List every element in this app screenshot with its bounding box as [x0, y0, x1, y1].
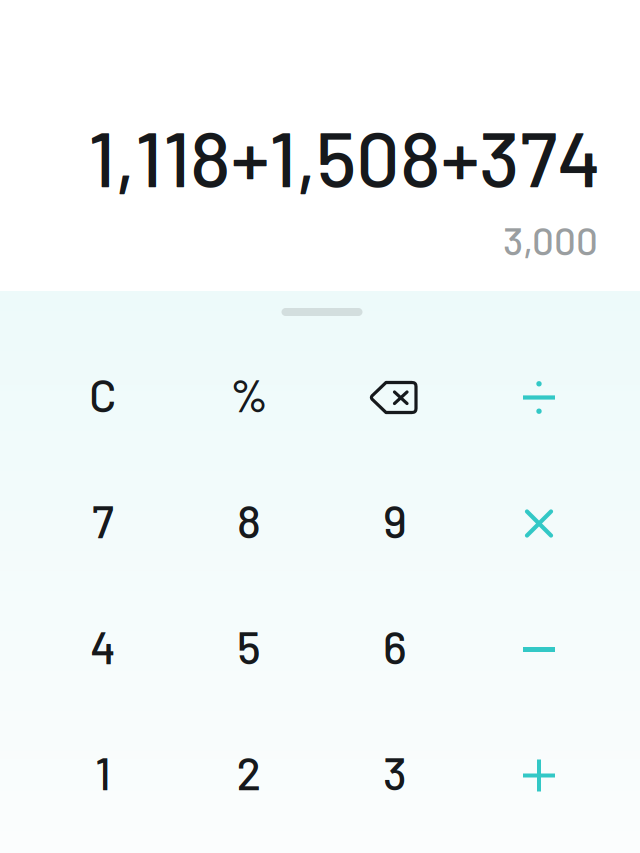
button[interactable]: Multiply [468, 457, 614, 583]
button[interactable]: 8 [176, 457, 322, 583]
staticText: 3,000 [503, 217, 598, 263]
button[interactable]: 9 [322, 457, 468, 583]
button[interactable]: 1 [30, 709, 176, 835]
button[interactable]: 4 [30, 583, 176, 709]
button[interactable]: % [176, 331, 322, 457]
staticText: 4 [90, 619, 116, 673]
button[interactable]: Divide [468, 331, 614, 457]
staticText: 1 [95, 745, 111, 799]
staticText: 7 [92, 493, 114, 547]
button[interactable]: Delete [322, 331, 468, 457]
staticText: C [89, 367, 117, 421]
staticText: 2 [236, 745, 261, 799]
button[interactable]: 2 [176, 709, 322, 835]
button[interactable]: 5 [176, 583, 322, 709]
staticText: 9 [383, 493, 407, 547]
button[interactable]: Minus [468, 583, 614, 709]
staticText: % [230, 367, 268, 421]
button[interactable]: C [30, 331, 176, 457]
button[interactable]: 7 [30, 457, 176, 583]
staticText: 6 [383, 619, 407, 673]
staticText: 5 [237, 619, 261, 673]
staticText: 8 [237, 493, 261, 547]
staticText: 3 [383, 745, 407, 799]
button[interactable]: Plus [468, 709, 614, 835]
staticText: 1,118+1,508+374 [88, 110, 601, 203]
button[interactable]: 6 [322, 583, 468, 709]
button[interactable]: 3 [322, 709, 468, 835]
